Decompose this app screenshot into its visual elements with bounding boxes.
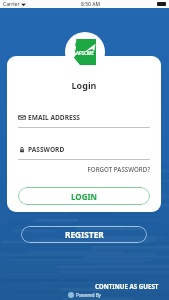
button[interactable]: LOGIN bbox=[18, 187, 150, 205]
staticText: Carrier bbox=[3, 1, 20, 8]
staticText: PASSWORD bbox=[28, 145, 65, 154]
button[interactable]: CONTINUE AS GUEST bbox=[87, 280, 169, 292]
staticText: REGISTER bbox=[65, 229, 104, 240]
staticText: LOGIN bbox=[71, 191, 98, 202]
staticText: 8:50 AM bbox=[81, 1, 101, 8]
staticText: EMAIL ADDRESS bbox=[28, 113, 80, 122]
staticText: Login bbox=[18, 79, 150, 91]
staticText: AFSCME bbox=[76, 50, 94, 56]
staticText: Powered By bbox=[76, 292, 101, 298]
button[interactable]: REGISTER bbox=[21, 226, 147, 243]
button[interactable]: FORGOT PASSWORD? bbox=[18, 165, 150, 173]
